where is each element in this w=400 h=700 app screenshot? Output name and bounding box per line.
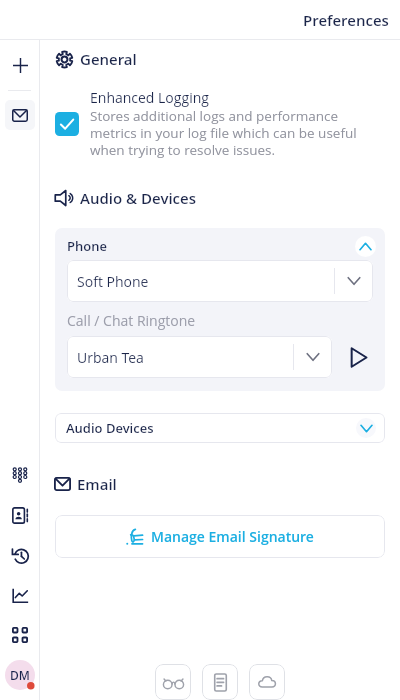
button[interactable]: Soft Phone [67, 260, 373, 302]
staticText: Enhanced Logging [90, 88, 209, 107]
staticText: Manage Email Signature [151, 527, 314, 546]
button[interactable]: Manage Email Signature [55, 515, 385, 558]
staticText: Call / Chat Ringtone [67, 311, 196, 330]
staticText: Email [77, 474, 117, 494]
staticText: Preferences [303, 10, 389, 30]
staticText: DM [10, 667, 30, 683]
button[interactable]: Messages [5, 100, 35, 130]
button[interactable]: Audio Devices [55, 413, 385, 443]
button[interactable]: Play ringtone [343, 342, 373, 372]
button[interactable]: Notes [202, 664, 238, 700]
button[interactable]: Urban Tea [67, 336, 332, 378]
button[interactable]: Enhanced Logging enabled [55, 112, 79, 136]
staticText: Stores additional logs and performance m… [90, 107, 362, 159]
staticText: Audio & Devices [80, 188, 196, 208]
button[interactable]: Analytics [5, 580, 35, 610]
button[interactable]: Contacts [5, 500, 35, 530]
staticText: Phone [67, 237, 107, 255]
button[interactable]: New [5, 50, 35, 80]
button[interactable]: Focus mode [155, 664, 191, 700]
button[interactable]: Phone [67, 233, 373, 259]
button[interactable]: Call history [5, 540, 35, 570]
button[interactable]: Cloud [249, 664, 285, 700]
staticText: Audio Devices [66, 419, 154, 437]
staticText: General [80, 49, 137, 69]
staticText: Urban Tea [77, 348, 293, 367]
staticText: Soft Phone [77, 272, 334, 291]
button[interactable]: Apps [5, 620, 35, 650]
button[interactable]: Profile DM [5, 660, 35, 690]
button[interactable]: Dialpad [5, 460, 35, 490]
